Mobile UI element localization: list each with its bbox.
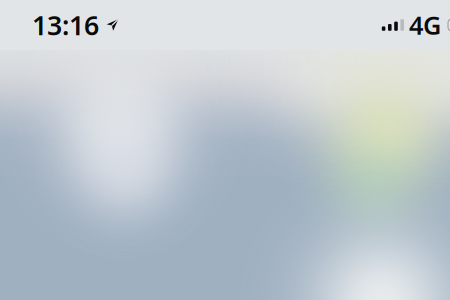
- staticText: 13:16: [32, 7, 99, 43]
- staticText: 4G: [409, 8, 441, 42]
